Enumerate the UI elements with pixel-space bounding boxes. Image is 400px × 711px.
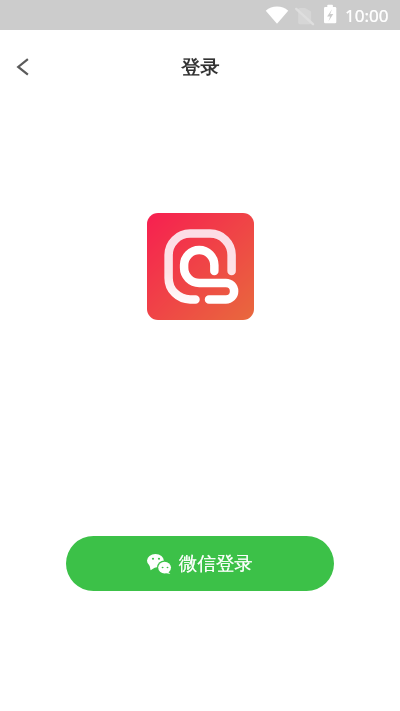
staticText: 10:00 [345,4,389,27]
staticText: 登录 [181,56,219,80]
staticText: 微信登录 [179,552,253,575]
button[interactable]: 微信登录 [66,536,334,591]
button[interactable]: Back [0,45,44,89]
